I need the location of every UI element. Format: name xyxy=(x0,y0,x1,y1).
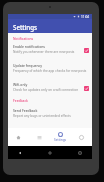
staticText: Report any bugs or unintended effects ex… xyxy=(13,114,89,118)
button[interactable]: Enable notifications xyxy=(8,42,92,55)
button[interactable]: Settings xyxy=(50,128,71,146)
staticText: Wifi-only xyxy=(13,82,28,87)
staticText: Check for updates only on a wifi connect… xyxy=(13,88,79,92)
button[interactable]: Send Feedback xyxy=(8,106,92,119)
staticText: Frequency of which the app checks for ne… xyxy=(13,69,87,73)
staticText: Settings xyxy=(54,138,67,142)
other: Recents xyxy=(78,151,82,155)
button[interactable]: Home xyxy=(8,128,29,146)
staticText: Feedback xyxy=(13,98,28,102)
button[interactable]: List xyxy=(29,128,50,146)
staticText: Send Feedback xyxy=(13,108,38,113)
button[interactable]: Update frequency xyxy=(8,61,92,74)
button[interactable]: Info xyxy=(71,128,92,146)
staticText: Update frequency xyxy=(13,63,43,68)
button[interactable]: Wifi-only xyxy=(8,80,92,93)
other: Home xyxy=(48,151,52,155)
button[interactable]: Toggle Enable notifications xyxy=(84,48,89,53)
staticText: 11:04 xyxy=(81,15,90,19)
staticText: Notifications xyxy=(13,36,34,40)
button[interactable]: Toggle Wifi-only xyxy=(84,86,89,91)
other: Back xyxy=(18,151,22,155)
staticText: Settings xyxy=(13,23,38,31)
staticText: Notify you whenever there are new posts xyxy=(13,50,75,54)
staticText: Enable notifications xyxy=(13,44,45,49)
